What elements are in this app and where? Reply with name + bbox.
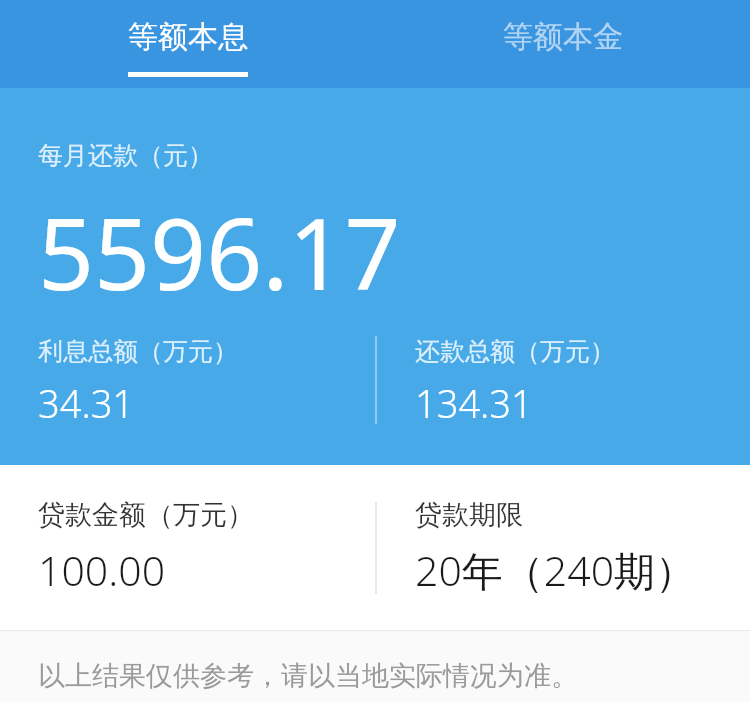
staticText: 每月还款（元） [38,140,213,171]
button[interactable]: 等额本金 [375,0,750,88]
staticText: 20年（240期） [415,542,697,598]
staticText: 利息总额（万元） [38,336,238,367]
staticText: 5596.17 [38,185,401,318]
staticText: 贷款金额（万元） [38,498,254,532]
staticText: 34.31 [38,377,135,429]
staticText: 贷款期限 [415,498,523,532]
staticText: 以上结果仅供参考，请以当地实际情况为准。 [38,659,578,693]
button[interactable]: 等额本息 [0,0,375,88]
staticText: 等额本金 [503,18,623,56]
staticText: 等额本息 [128,18,248,56]
staticText: 100.00 [38,542,166,598]
staticText: 还款总额（万元） [415,336,615,367]
staticText: 134.31 [415,377,533,429]
